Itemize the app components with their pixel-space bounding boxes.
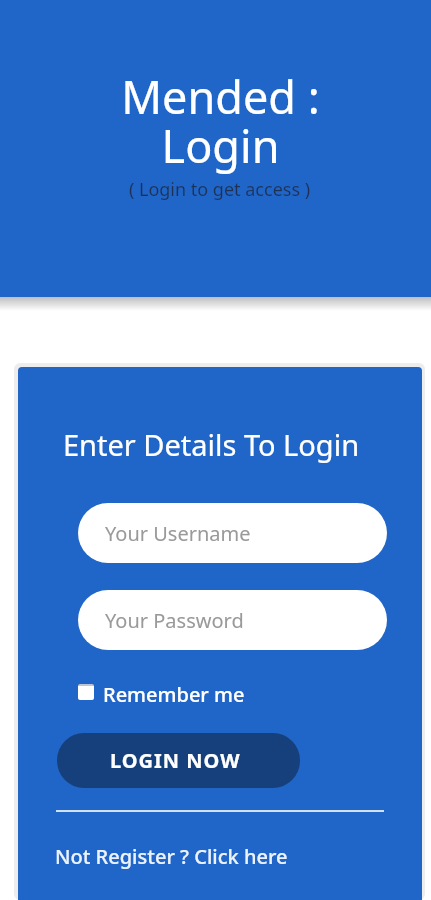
staticText: LOGIN NOW <box>110 747 241 774</box>
button[interactable]: LOGIN NOW <box>57 733 300 788</box>
button[interactable]: Your Username <box>78 503 387 563</box>
staticText: Remember me <box>103 681 245 708</box>
button[interactable]: Not Register ? Click here <box>55 843 288 870</box>
staticText: Mended : <box>5 66 431 127</box>
button[interactable]: Remember me <box>78 680 245 707</box>
staticText: ( Login to get access ) <box>4 177 431 202</box>
staticText: Your Password <box>105 607 244 634</box>
staticText: Login <box>5 115 431 176</box>
staticText: Enter Details To Login <box>18 425 413 464</box>
button[interactable]: Your Password <box>78 590 387 650</box>
staticText: Your Username <box>105 520 251 547</box>
